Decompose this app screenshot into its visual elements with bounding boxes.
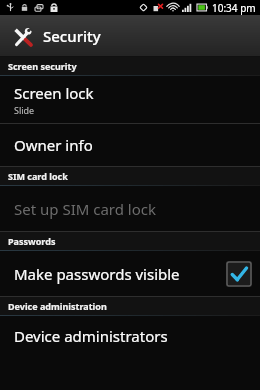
staticText: SIM card lock xyxy=(8,170,68,182)
button: Set up SIM card lock xyxy=(0,186,260,231)
other: Settings xyxy=(9,23,35,49)
staticText: Device administration xyxy=(8,300,107,312)
staticText: Set up SIM card lock xyxy=(14,199,157,219)
staticText: Make passwords visible xyxy=(14,264,180,284)
staticText: Device administrators xyxy=(14,326,168,346)
button[interactable]: Device administrators xyxy=(0,316,260,356)
staticText: Slide xyxy=(14,104,35,116)
staticText: Security xyxy=(43,26,101,46)
button[interactable]: Screen lock xyxy=(0,76,260,123)
button[interactable]: Make passwords visible xyxy=(0,251,260,296)
staticText: Screen security xyxy=(8,60,77,72)
staticText: Screen lock xyxy=(14,83,94,103)
button[interactable]: Owner info xyxy=(0,124,260,166)
staticText: 10:34 pm xyxy=(212,1,256,15)
button[interactable]: Make passwords visible checkbox xyxy=(226,261,252,287)
staticText: Passwords xyxy=(8,235,56,247)
staticText: Owner info xyxy=(14,135,93,155)
